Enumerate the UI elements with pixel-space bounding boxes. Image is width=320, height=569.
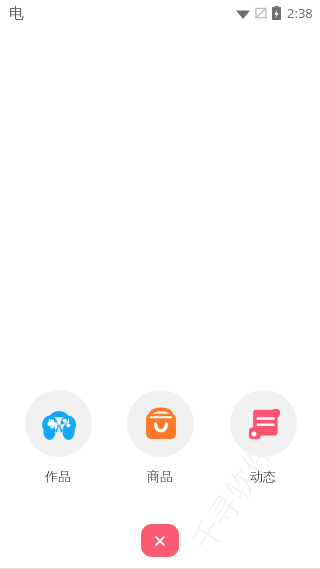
staticText: 千寻软件站 (185, 410, 297, 558)
staticText: 商品 (147, 468, 173, 484)
button[interactable]: 动态 (218, 390, 308, 484)
staticText: 作品 (45, 468, 71, 484)
staticText: 2:38 (287, 4, 313, 22)
button[interactable]: Close (141, 524, 179, 557)
button[interactable]: 商品 (115, 390, 205, 484)
staticText: 电 (9, 4, 24, 23)
staticText: 动态 (250, 468, 276, 484)
button[interactable]: 作品 (13, 390, 103, 484)
